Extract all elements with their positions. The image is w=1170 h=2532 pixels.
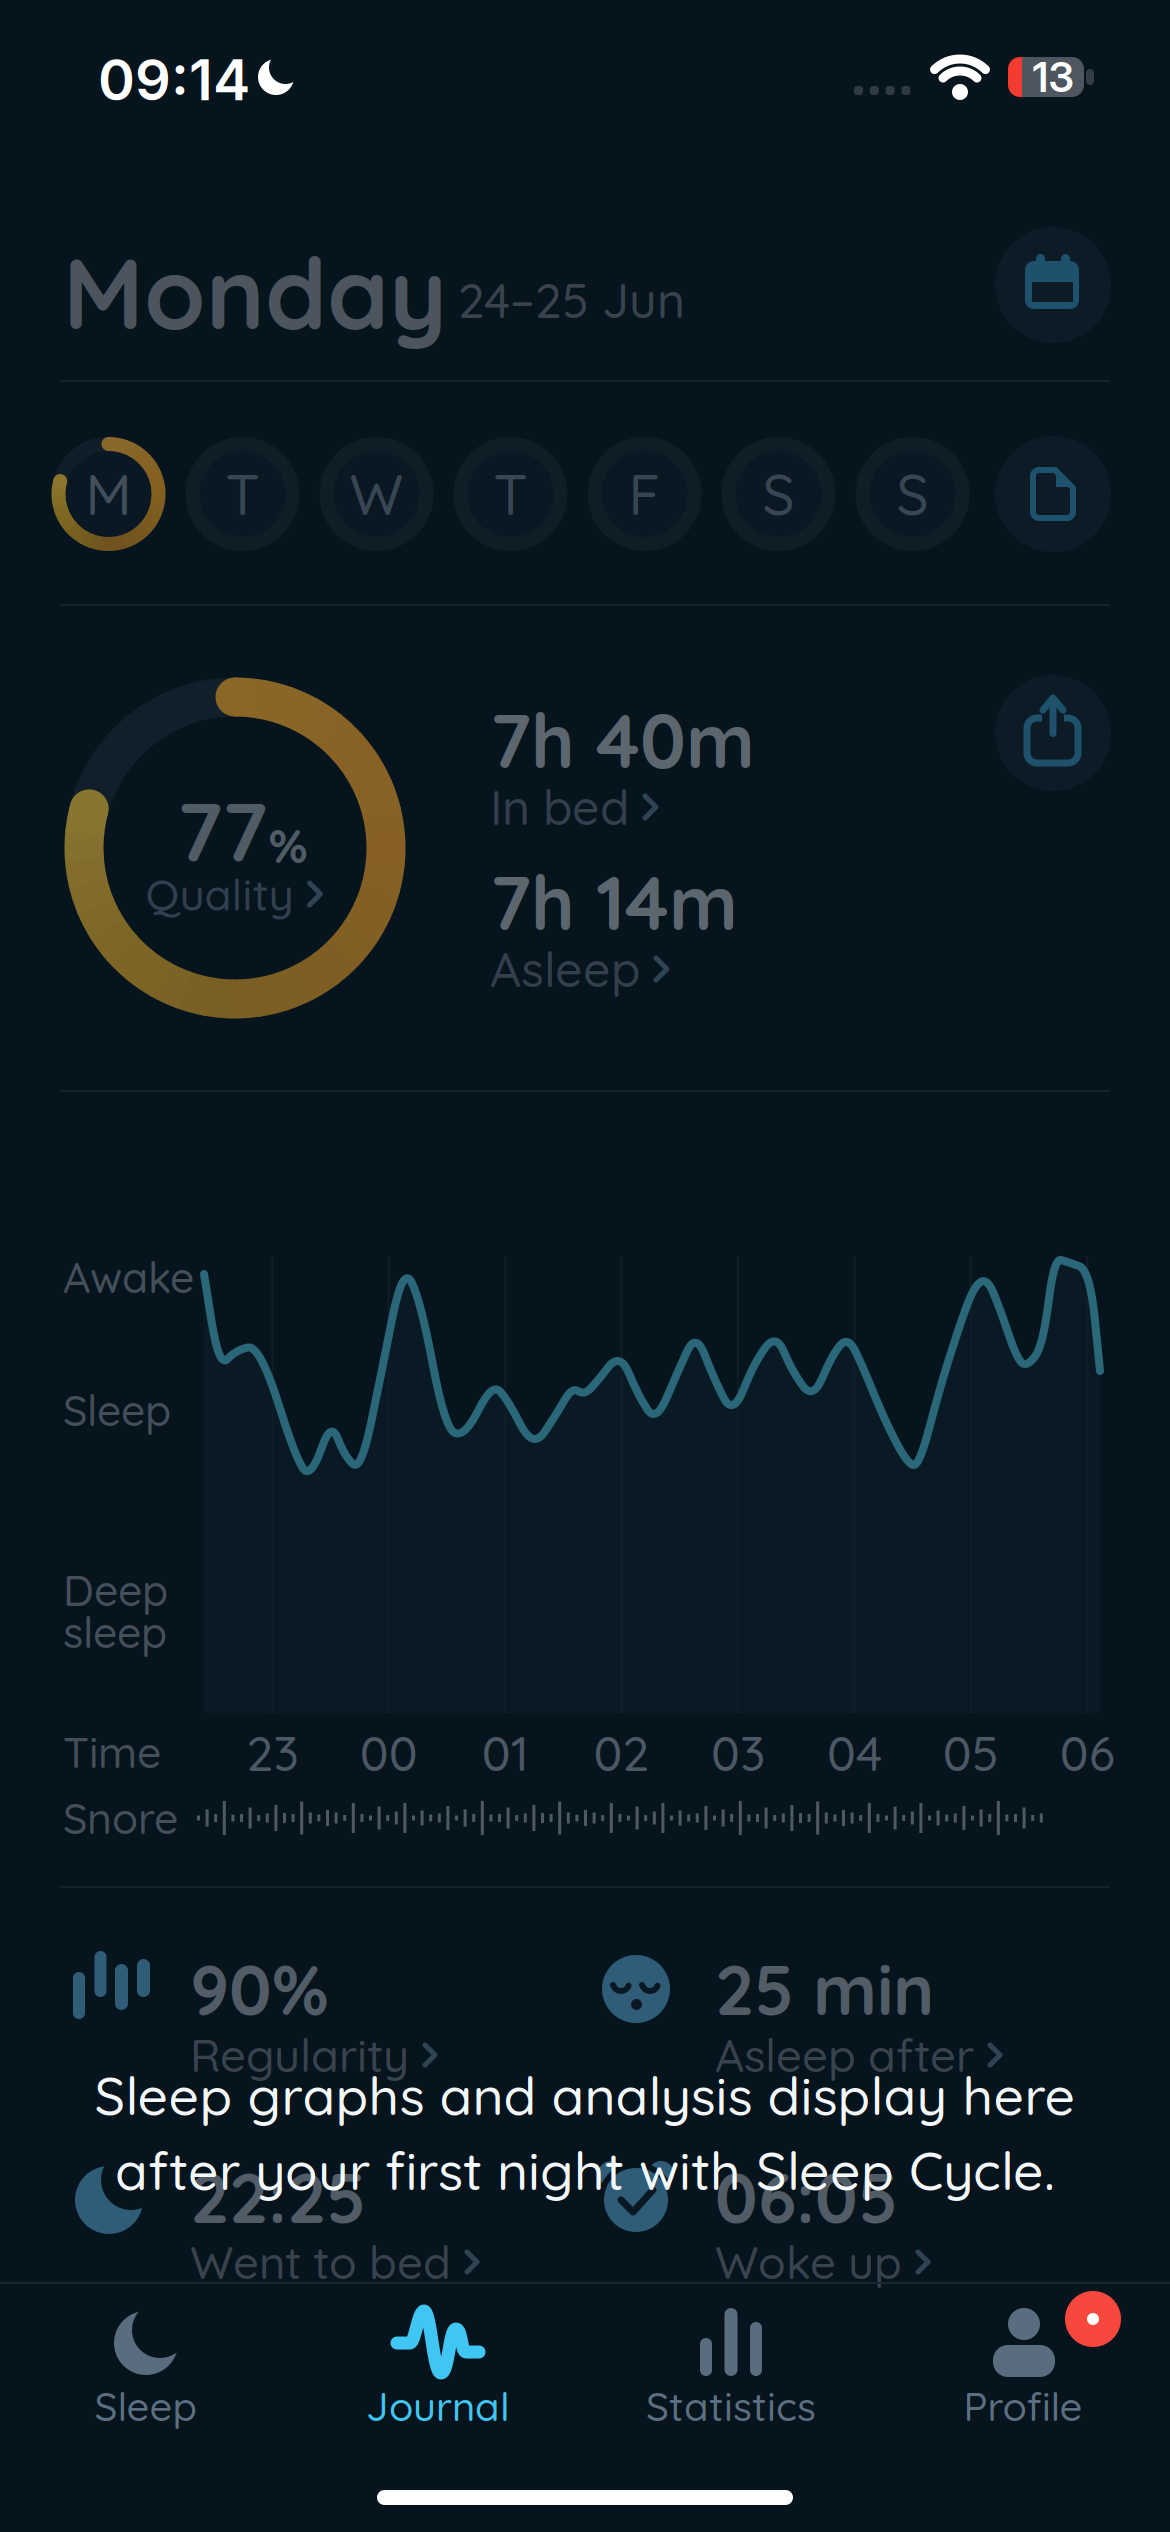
- staticText: 22:25: [190, 2154, 366, 2240]
- staticText: Sleep graphs and analysis display here: [94, 2062, 1075, 2128]
- staticText: Asleep after: [715, 2027, 974, 2083]
- button[interactable]: T: [184, 436, 300, 552]
- staticText: 02: [594, 1723, 650, 1783]
- staticText: 24–25 Jun: [458, 270, 685, 330]
- staticText: %: [268, 815, 307, 875]
- button[interactable]: 90%: [60, 1935, 565, 2085]
- staticText: Woke up: [715, 2234, 902, 2290]
- staticText: Time: [63, 1725, 161, 1779]
- staticText: T: [493, 459, 527, 529]
- staticText: 90%: [190, 1946, 329, 2032]
- staticText: Statistics: [646, 2381, 816, 2431]
- button[interactable]: T: [452, 436, 568, 552]
- staticText: Sleep: [94, 2381, 197, 2431]
- staticText: 09:14: [98, 46, 250, 114]
- staticText: 00: [360, 1723, 418, 1783]
- staticText: Regularity: [190, 2027, 409, 2083]
- staticText: 13: [1032, 52, 1073, 102]
- staticText: S: [896, 459, 928, 529]
- staticText: Profile: [963, 2381, 1082, 2431]
- button[interactable]: W: [318, 436, 434, 552]
- staticText: Asleep: [490, 939, 640, 999]
- staticText: W: [349, 459, 403, 529]
- button[interactable]: 77: [60, 673, 410, 1023]
- staticText: Journal: [366, 2381, 510, 2431]
- button[interactable]: Journal: [313, 2290, 563, 2440]
- staticText: In bed: [490, 777, 629, 837]
- staticText: 06: [1060, 1723, 1115, 1783]
- staticText: 7h 40m: [490, 693, 755, 787]
- button[interactable]: S: [854, 436, 970, 552]
- staticText: Went to bed: [190, 2234, 451, 2290]
- button[interactable]: Statistics: [606, 2290, 856, 2440]
- staticText: 25 min: [715, 1946, 934, 2032]
- staticText: sleep: [63, 1605, 167, 1659]
- button[interactable]: 7h 14m: [490, 860, 830, 1000]
- staticText: 7h 14m: [490, 855, 738, 949]
- staticText: M: [85, 459, 131, 529]
- staticText: 23: [246, 1723, 298, 1783]
- button[interactable]: S: [720, 436, 836, 552]
- staticText: 04: [827, 1723, 882, 1783]
- staticText: F: [628, 459, 660, 529]
- staticText: 06:05: [715, 2154, 898, 2240]
- button[interactable]: F: [586, 436, 702, 552]
- staticText: 03: [711, 1723, 765, 1783]
- staticText: 01: [482, 1723, 529, 1783]
- button[interactable]: 06:05: [580, 2140, 1100, 2290]
- staticText: 77: [177, 778, 267, 882]
- button[interactable]: [995, 675, 1111, 791]
- button[interactable]: 25 min: [580, 1935, 1100, 2085]
- button[interactable]: [995, 227, 1111, 343]
- button[interactable]: 7h 40m: [490, 698, 830, 838]
- staticText: 05: [943, 1723, 999, 1783]
- button[interactable]: Profile: [898, 2290, 1148, 2440]
- staticText: S: [762, 459, 794, 529]
- staticText: Awake: [63, 1250, 194, 1304]
- staticText: Snore: [63, 1791, 178, 1845]
- button[interactable]: [995, 436, 1111, 552]
- staticText: Monday: [63, 230, 447, 354]
- staticText: Deep: [63, 1563, 168, 1617]
- staticText: T: [225, 459, 259, 529]
- button[interactable]: M: [50, 436, 166, 552]
- button[interactable]: Sleep: [21, 2290, 271, 2440]
- staticText: Quality: [145, 866, 293, 921]
- button[interactable]: 22:25: [60, 2140, 565, 2290]
- staticText: after your first night with Sleep Cycle.: [115, 2137, 1055, 2203]
- staticText: Sleep: [63, 1383, 171, 1437]
